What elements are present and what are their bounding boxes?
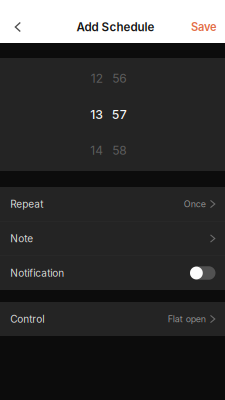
staticText: 56 [112, 71, 126, 86]
staticText: 57 [112, 107, 127, 122]
staticText: 14 [90, 143, 103, 158]
staticText: Notification [10, 267, 64, 279]
staticText: 13 [90, 107, 103, 122]
button[interactable]: Repeat [0, 187, 225, 221]
button[interactable]: Notification [0, 256, 225, 290]
staticText: Once [184, 199, 206, 209]
staticText: Flat open [168, 314, 206, 324]
button[interactable]: Note [0, 221, 225, 255]
staticText: Control [10, 313, 44, 325]
staticText: Save [191, 20, 217, 34]
staticText: Repeat [10, 198, 43, 210]
button[interactable]: Control [0, 302, 225, 336]
staticText: Note [10, 232, 33, 245]
staticText: 12 [91, 71, 103, 86]
staticText: Add Schedule [76, 20, 154, 34]
button[interactable]: Save [183, 11, 225, 43]
staticText: 58 [112, 143, 126, 158]
button[interactable]: Back [0, 11, 36, 43]
